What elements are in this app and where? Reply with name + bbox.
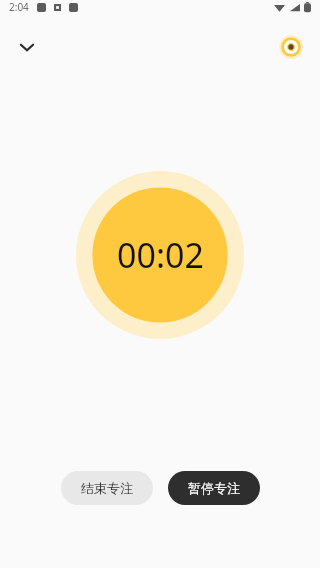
button[interactable]: Collapse (11, 31, 43, 63)
button[interactable]: 暂停专注 (168, 471, 260, 505)
button[interactable]: 结束专注 (61, 471, 153, 505)
staticText: 暂停专注 (188, 480, 240, 496)
staticText: 00:02 (117, 232, 204, 278)
button[interactable]: Focus sound (274, 30, 308, 64)
staticText: 结束专注 (81, 480, 133, 496)
staticText: 2:04 (9, 0, 29, 14)
